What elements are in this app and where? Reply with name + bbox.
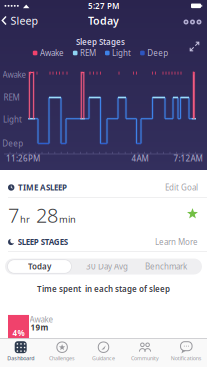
staticText: REM — [3, 92, 19, 103]
button[interactable]: Community — [131, 341, 159, 362]
button[interactable]: Guidance — [92, 341, 115, 362]
button[interactable]: Edit Goal — [165, 182, 198, 193]
staticText: min — [59, 213, 76, 225]
staticText: Dashboard — [7, 355, 34, 362]
staticText: SLEEP STAGES — [18, 237, 68, 247]
staticText: 4AM — [131, 153, 148, 164]
staticText: 30 Day Avg — [86, 261, 128, 272]
button[interactable]: Challenges — [49, 341, 75, 362]
staticText: Deep — [147, 48, 168, 58]
staticText: Edit Goal — [165, 182, 198, 193]
staticText: Awake — [40, 48, 64, 58]
staticText: Awake — [2, 69, 26, 80]
staticText: Community — [131, 355, 159, 362]
button[interactable]: Dashboard — [7, 341, 34, 362]
staticText: Deep — [2, 138, 23, 149]
button[interactable]: Expand chart — [189, 41, 199, 51]
button[interactable]: Learn More — [155, 237, 198, 247]
staticText: Guidance — [92, 355, 115, 362]
staticText: 28 — [31, 202, 58, 228]
staticText: 7 — [8, 202, 19, 228]
staticText: Today — [28, 261, 51, 272]
staticText: Challenges — [49, 355, 75, 362]
button[interactable]: Today — [7, 260, 71, 273]
button[interactable]: Notifications — [171, 341, 202, 362]
staticText: Notifications — [171, 355, 202, 362]
staticText: 11:26PM — [6, 153, 40, 164]
staticText: Sleep — [10, 13, 38, 28]
staticText: 19m — [30, 322, 48, 333]
staticText: Sleep Stages — [76, 37, 125, 47]
staticText: TIME ASLEEP — [18, 182, 67, 193]
staticText: 7:12AM — [173, 153, 202, 164]
staticText: Learn More — [155, 237, 198, 247]
staticText: Light — [3, 114, 22, 125]
staticText: Benchmark — [145, 261, 187, 272]
staticText: hr — [20, 213, 30, 225]
staticText: Awake — [29, 314, 53, 325]
button[interactable]: 30 Day Avg — [86, 261, 128, 272]
staticText: 5:27 PM — [88, 1, 119, 11]
button[interactable]: Sleep — [1, 13, 38, 28]
staticText: Light — [112, 48, 131, 58]
staticText: Today — [88, 13, 119, 28]
staticText: REM — [80, 48, 96, 58]
staticText: Time spent in each stage of sleep — [37, 284, 170, 294]
staticText: 4% — [12, 328, 24, 338]
button[interactable]: More — [183, 19, 201, 24]
button[interactable]: Benchmark — [145, 261, 187, 272]
